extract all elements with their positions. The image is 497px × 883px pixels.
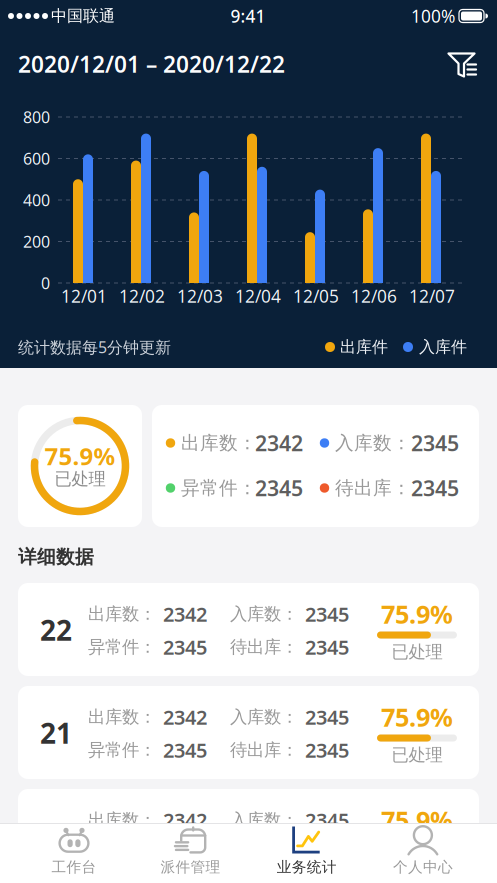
- staticText: 75.9%: [44, 440, 115, 472]
- staticText: 个人中心: [393, 858, 453, 876]
- staticText: 2345: [305, 807, 349, 833]
- staticText: 2345: [255, 474, 303, 502]
- staticText: 已处理: [54, 468, 105, 490]
- staticText: 200: [23, 231, 50, 252]
- staticText: 2345: [163, 634, 207, 660]
- staticText: 异常件：: [88, 739, 156, 761]
- staticText: 2345: [305, 840, 349, 866]
- staticText: 异常件：: [88, 636, 156, 658]
- staticText: 75.9%: [381, 803, 453, 837]
- staticText: 入库数：: [335, 431, 411, 454]
- staticText: 2345: [305, 634, 349, 660]
- button[interactable]: 派件管理: [132, 824, 248, 882]
- staticText: 2345: [411, 474, 459, 502]
- staticText: 600: [23, 148, 50, 169]
- staticText: 9:41: [230, 4, 265, 27]
- staticText: 22: [40, 611, 72, 649]
- staticText: 12/01: [61, 284, 107, 307]
- staticText: 2345: [411, 429, 459, 457]
- staticText: 2342: [163, 807, 207, 833]
- staticText: 2345: [163, 840, 207, 866]
- staticText: 12/06: [351, 284, 397, 307]
- staticText: 21: [40, 714, 72, 752]
- staticText: 出库数：: [181, 431, 257, 454]
- staticText: 0: [41, 272, 50, 294]
- button[interactable]: 21: [18, 686, 479, 779]
- staticText: 出库数：: [88, 603, 156, 625]
- staticText: 派件管理: [160, 858, 220, 876]
- staticText: 详细数据: [18, 545, 94, 568]
- staticText: 出库数：: [88, 809, 156, 831]
- staticText: 中国联通: [51, 6, 115, 26]
- staticText: 入库数：: [230, 706, 298, 728]
- staticText: 出库数：: [88, 706, 156, 728]
- staticText: 12/04: [235, 284, 281, 307]
- staticText: 已处理: [391, 641, 442, 663]
- button[interactable]: 22: [18, 583, 479, 676]
- staticText: 异常件：: [181, 476, 257, 499]
- staticText: 入库件: [419, 337, 467, 357]
- button[interactable]: 业务统计: [249, 824, 365, 882]
- staticText: 已处理: [391, 744, 442, 766]
- staticText: 2342: [255, 429, 303, 457]
- staticText: 出库件: [340, 337, 388, 357]
- button[interactable]: 20: [18, 789, 479, 882]
- staticText: 2345: [305, 704, 349, 730]
- staticText: 12/02: [119, 284, 165, 307]
- staticText: 12/07: [409, 284, 455, 307]
- staticText: 业务统计: [277, 858, 337, 876]
- staticText: 75.9%: [381, 597, 453, 631]
- staticText: 20: [40, 817, 72, 855]
- staticText: 入库数：: [230, 603, 298, 625]
- staticText: 待出库：: [230, 636, 298, 658]
- staticText: 400: [23, 189, 50, 211]
- button[interactable]: Filter: [440, 43, 484, 87]
- button[interactable]: 个人中心: [365, 824, 481, 882]
- staticText: 异常件：: [88, 842, 156, 864]
- staticText: 800: [23, 106, 50, 128]
- staticText: 已处理: [391, 847, 442, 869]
- staticText: 2342: [163, 704, 207, 730]
- button[interactable]: 工作台: [16, 824, 132, 882]
- staticText: 100%: [411, 4, 455, 27]
- staticText: 入库数：: [230, 809, 298, 831]
- staticText: 工作台: [51, 858, 96, 876]
- staticText: 2345: [163, 737, 207, 763]
- staticText: 2345: [305, 737, 349, 763]
- staticText: 2020/12/01 – 2020/12/22: [18, 49, 285, 79]
- staticText: 12/05: [293, 284, 339, 307]
- staticText: 2345: [305, 601, 349, 627]
- staticText: 12/03: [177, 284, 223, 307]
- staticText: 待出库：: [230, 842, 298, 864]
- staticText: 待出库：: [335, 476, 411, 499]
- staticText: 待出库：: [230, 739, 298, 761]
- staticText: 2342: [163, 601, 207, 627]
- staticText: 75.9%: [381, 700, 453, 734]
- staticText: 统计数据每5分钟更新: [18, 336, 171, 358]
